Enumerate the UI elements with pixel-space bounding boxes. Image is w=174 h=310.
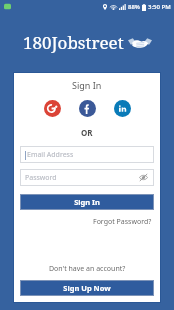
- staticText: Forgot Password?: [93, 217, 152, 227]
- staticText: Sign In: [72, 79, 102, 91]
- button[interactable]: Sign in with LinkedIn: [114, 100, 131, 117]
- staticText: Sign Up Now: [63, 283, 111, 293]
- button[interactable]: Forgot Password?: [91, 216, 154, 228]
- staticText: 3:50 PM: [148, 3, 171, 11]
- button[interactable]: Password: [20, 169, 154, 186]
- staticText: Don't have an account?: [49, 264, 126, 274]
- button[interactable]: Sign in with Google: [44, 100, 61, 117]
- button[interactable]: Sign In: [20, 194, 154, 210]
- staticText: OR: [81, 127, 93, 138]
- staticText: Sign In: [74, 197, 100, 207]
- staticText: Password: [25, 173, 57, 183]
- button[interactable]: Show password: [138, 172, 149, 183]
- button[interactable]: Email Address: [20, 146, 154, 163]
- staticText: 180Jobstreet: [23, 31, 124, 54]
- staticText: Email Address: [27, 150, 74, 160]
- button[interactable]: Sign Up Now: [20, 280, 154, 296]
- staticText: 88%: [128, 3, 140, 11]
- button[interactable]: Sign in with Facebook: [79, 100, 96, 117]
